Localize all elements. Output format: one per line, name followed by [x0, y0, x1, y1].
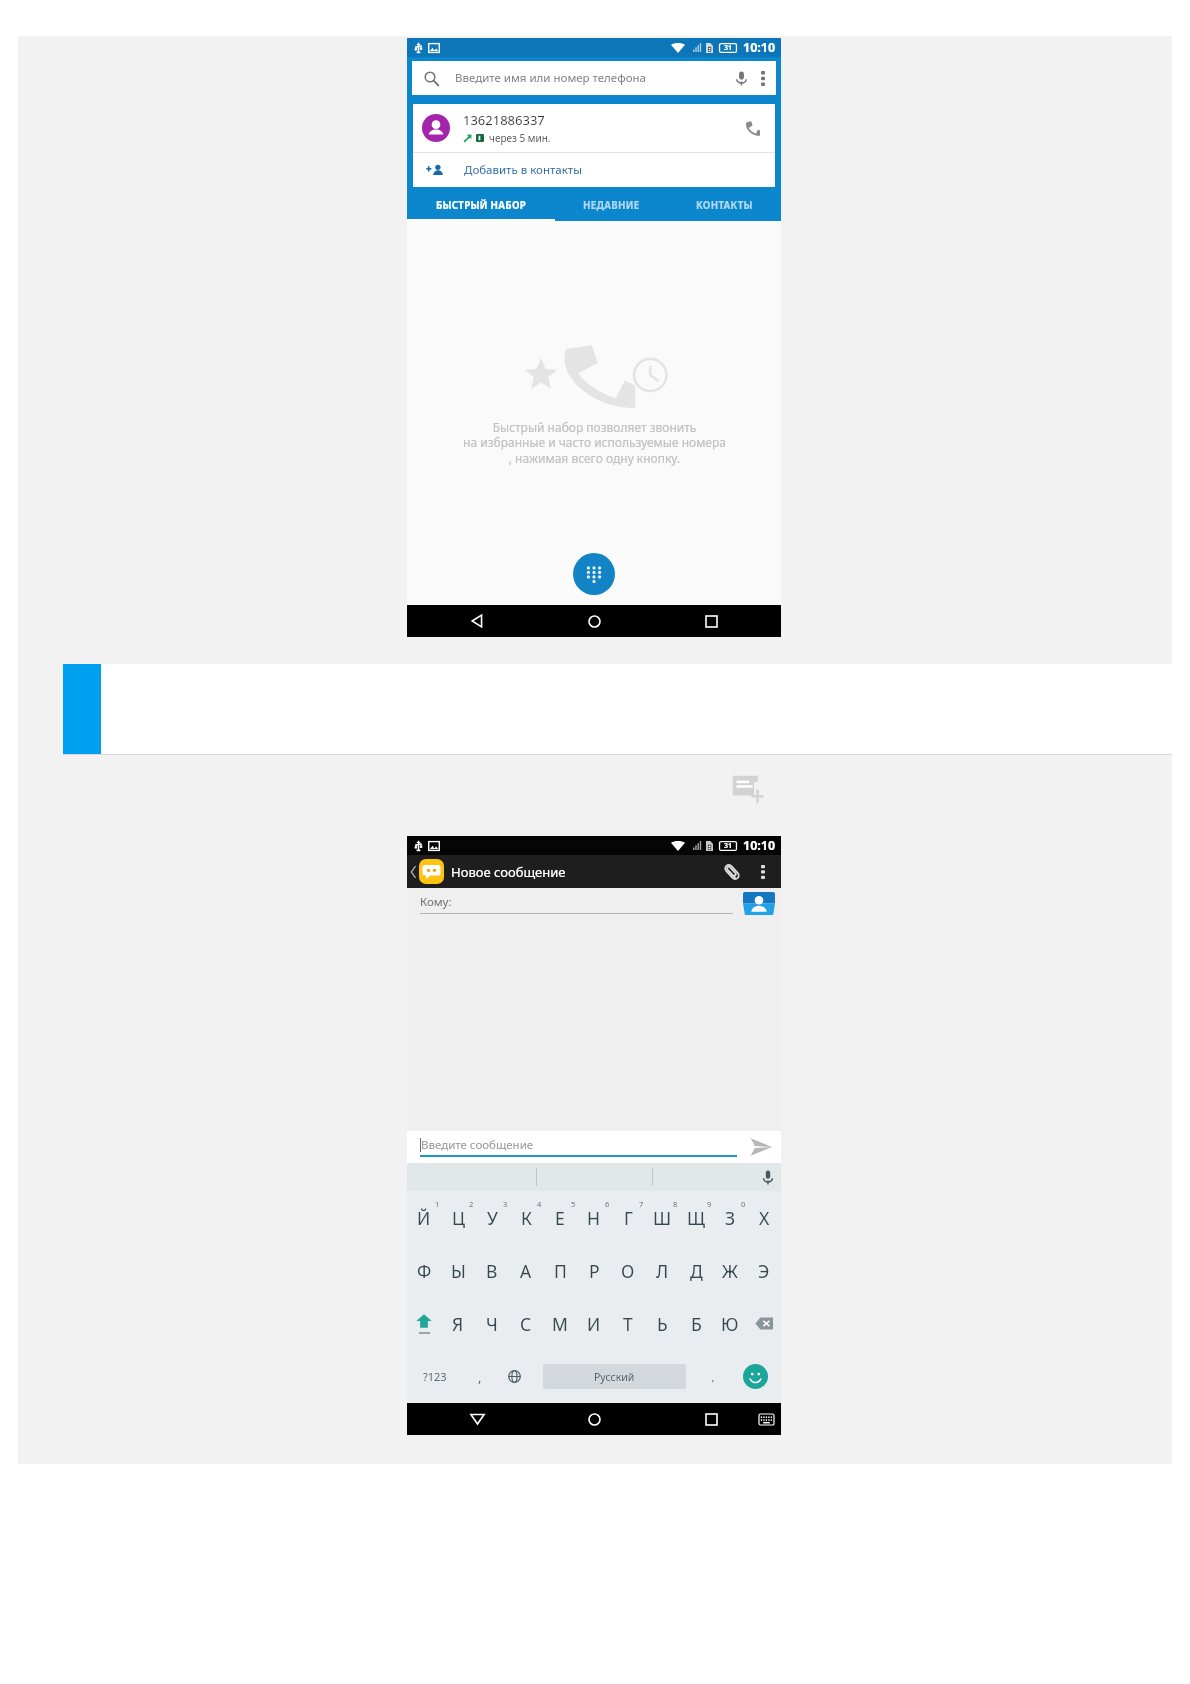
staticText: Быстрый набор позволяет звонить на избра… — [463, 419, 726, 467]
button[interactable]: КОНТАКТЫ — [668, 189, 781, 221]
staticText: Щ — [687, 1206, 705, 1230]
staticText: 10:10 — [743, 39, 776, 56]
staticText: 8 — [673, 1199, 678, 1209]
staticText: 3 — [503, 1199, 508, 1209]
button[interactable]: Ф — [407, 1244, 441, 1297]
button[interactable]: . — [696, 1350, 729, 1403]
button[interactable]: Й — [407, 1191, 441, 1244]
other: Back — [410, 865, 417, 879]
button[interactable]: Н — [577, 1191, 611, 1244]
button[interactable]: Г — [611, 1191, 645, 1244]
button[interactable]: С — [509, 1297, 543, 1350]
staticText: 7 — [639, 1199, 644, 1209]
button[interactable]: Ш — [645, 1191, 679, 1244]
button[interactable]: В — [475, 1244, 509, 1297]
button[interactable]: Ы — [441, 1244, 475, 1297]
button[interactable]: Recents — [653, 1403, 770, 1435]
button[interactable]: Backspace — [747, 1297, 781, 1350]
button[interactable]: Э — [747, 1244, 781, 1297]
button[interactable]: Home — [536, 1403, 653, 1435]
button[interactable]: А — [509, 1244, 543, 1297]
button[interactable]: ?123 — [407, 1350, 463, 1403]
button[interactable]: Back — [418, 605, 536, 637]
staticText: Й — [417, 1206, 431, 1230]
button[interactable]: Language — [496, 1350, 533, 1403]
button[interactable]: НЕДАВНИЕ — [555, 189, 668, 221]
staticText: В — [486, 1259, 498, 1283]
staticText: Кому: — [420, 894, 452, 910]
button[interactable]: Р — [577, 1244, 611, 1297]
button[interactable]: Shift — [407, 1297, 441, 1350]
button[interactable]: Ю — [713, 1297, 747, 1350]
staticText: Е — [555, 1206, 565, 1230]
staticText: Ч — [486, 1312, 498, 1336]
staticText: 5 — [571, 1199, 576, 1209]
button[interactable]: Б — [679, 1297, 713, 1350]
button[interactable]: Emoji — [729, 1350, 781, 1403]
button[interactable]: , — [463, 1350, 496, 1403]
staticText: ?123 — [423, 1369, 447, 1384]
staticText: НЕДАВНИЕ — [583, 199, 640, 212]
button[interactable]: Добавить в контакты — [413, 153, 775, 187]
button[interactable]: Attach — [717, 857, 747, 887]
staticText: 13621886337 — [463, 111, 545, 129]
staticText: З — [725, 1206, 736, 1230]
button[interactable]: И — [577, 1297, 611, 1350]
button[interactable]: Back — [418, 1403, 536, 1435]
button[interactable]: Dialpad — [573, 553, 615, 595]
button[interactable]: З — [713, 1191, 747, 1244]
staticText: Ф — [417, 1259, 432, 1283]
staticText: КОНТАКТЫ — [696, 199, 753, 212]
staticText: Х — [759, 1206, 770, 1230]
staticText: , — [478, 1368, 482, 1386]
button[interactable]: У — [475, 1191, 509, 1244]
staticText: А — [520, 1259, 532, 1283]
staticText: . — [711, 1368, 715, 1386]
staticText: Т — [623, 1312, 633, 1336]
button[interactable]: Т — [611, 1297, 645, 1350]
staticText: М — [552, 1312, 568, 1336]
button[interactable]: Recents — [653, 605, 770, 637]
button[interactable]: Call — [734, 110, 770, 146]
button[interactable]: БЫСТРЫЙ НАБОР — [407, 189, 555, 221]
staticText: С — [520, 1312, 532, 1336]
staticText: Д — [690, 1259, 703, 1283]
button[interactable]: Щ — [679, 1191, 713, 1244]
button[interactable]: Hide keyboard — [751, 1403, 781, 1435]
button[interactable]: Х — [747, 1191, 781, 1244]
staticText: У — [487, 1206, 498, 1230]
button[interactable]: Ц — [441, 1191, 475, 1244]
button[interactable]: К — [509, 1191, 543, 1244]
button[interactable]: Send — [745, 1131, 777, 1163]
staticText: Русский — [594, 1370, 635, 1384]
staticText: П — [554, 1259, 567, 1283]
staticText: 10:10 — [743, 837, 776, 854]
button[interactable]: Я — [441, 1297, 475, 1350]
button[interactable]: Ь — [645, 1297, 679, 1350]
button[interactable]: Русский — [543, 1364, 686, 1389]
button[interactable]: 13621886337 — [413, 104, 775, 152]
staticText: БЫСТРЫЙ НАБОР — [436, 199, 527, 212]
staticText: О — [621, 1259, 635, 1283]
button[interactable]: П — [543, 1244, 577, 1297]
staticText: Н — [587, 1206, 601, 1230]
staticText: Ю — [721, 1312, 739, 1336]
staticText: Я — [452, 1312, 464, 1336]
button[interactable]: Е — [543, 1191, 577, 1244]
button[interactable]: Л — [645, 1244, 679, 1297]
button[interactable]: Д — [679, 1244, 713, 1297]
staticText: Введите сообщение — [421, 1137, 534, 1153]
button[interactable]: Ж — [713, 1244, 747, 1297]
staticText: Новое сообщение — [451, 863, 566, 881]
button[interactable]: More options — [751, 860, 775, 884]
button[interactable]: М — [543, 1297, 577, 1350]
button[interactable]: Home — [536, 605, 653, 637]
button[interactable]: Pick contact — [743, 892, 775, 915]
staticText: Г — [624, 1206, 633, 1230]
staticText: Ш — [653, 1206, 672, 1230]
button[interactable]: Введите имя или номер телефона — [412, 61, 776, 95]
button[interactable]: Ч — [475, 1297, 509, 1350]
button[interactable]: О — [611, 1244, 645, 1297]
staticText: Б — [691, 1312, 702, 1336]
staticText: Ь — [657, 1312, 668, 1336]
